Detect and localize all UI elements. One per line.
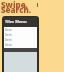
staticText: Item [5, 33, 12, 37]
staticText: Item [5, 38, 12, 42]
staticText: Tiles Menu [5, 19, 27, 24]
staticText: Swipe. [1, 0, 61, 10]
staticText: Search. [1, 4, 61, 15]
staticText: Item [5, 28, 12, 32]
staticText: Item [5, 43, 12, 47]
